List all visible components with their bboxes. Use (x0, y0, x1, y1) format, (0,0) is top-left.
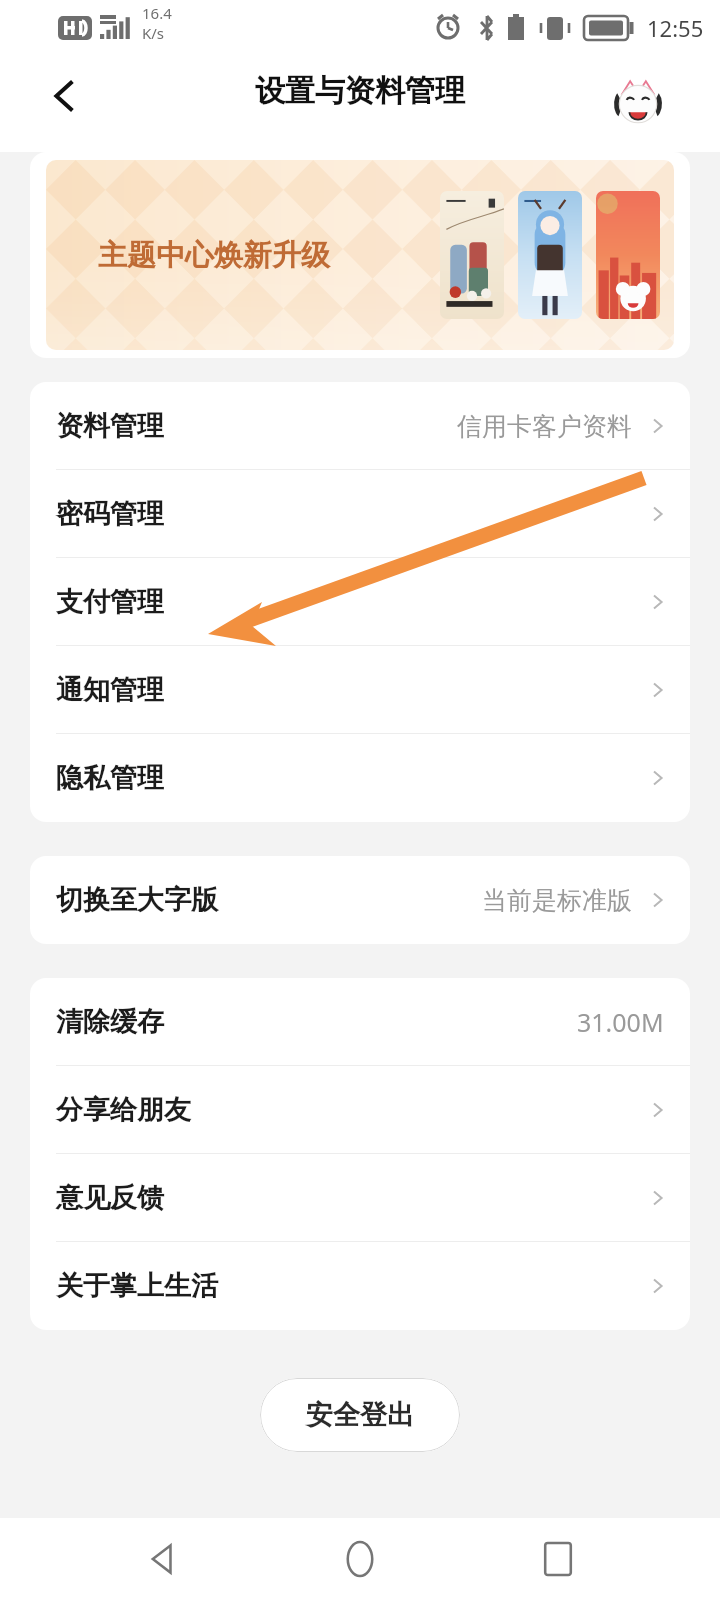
staticText: 支付管理 (56, 585, 164, 619)
staticText: 分享给朋友 (56, 1093, 191, 1127)
staticText: 通知管理 (56, 673, 164, 707)
button[interactable]: 资料管理 (30, 382, 690, 470)
staticText: 切换至大字版 (56, 883, 218, 917)
staticText: 16.4 (142, 3, 172, 23)
staticText: 31.00M (577, 1005, 664, 1039)
staticText: 设置与资料管理 (255, 72, 465, 110)
button[interactable]: 分享给朋友 (30, 1066, 690, 1154)
staticText: K/s (142, 23, 165, 43)
button[interactable]: Back (128, 1524, 198, 1594)
button[interactable]: Recent apps (523, 1524, 593, 1594)
button[interactable]: Theme preview (596, 191, 660, 319)
staticText: 安全登出 (306, 1398, 414, 1432)
staticText: 隐私管理 (56, 761, 164, 795)
staticText: 关于掌上生活 (56, 1269, 218, 1303)
button[interactable]: Theme preview (518, 191, 582, 319)
staticText: 密码管理 (56, 497, 164, 531)
staticText: 意见反馈 (56, 1181, 164, 1215)
button[interactable]: Theme preview (440, 191, 504, 319)
button[interactable]: 关于掌上生活 (30, 1242, 690, 1330)
button[interactable]: 主题中心焕新升级 (30, 152, 690, 358)
button[interactable]: 隐私管理 (30, 734, 690, 822)
button[interactable]: 切换至大字版 (30, 856, 690, 944)
button[interactable]: 密码管理 (30, 470, 690, 558)
staticText: 资料管理 (56, 409, 164, 443)
button[interactable]: 支付管理 (30, 558, 690, 646)
button[interactable]: 清除缓存 (30, 978, 690, 1066)
staticText: 当前是标准版 (482, 885, 632, 916)
staticText: 主题中心焕新升级 (98, 237, 330, 274)
button[interactable]: Home (325, 1524, 395, 1594)
button[interactable]: Back (28, 58, 104, 134)
staticText: 12:55 (647, 13, 704, 43)
button[interactable]: Profile (608, 72, 668, 132)
staticText: 信用卡客户资料 (457, 411, 632, 442)
button[interactable]: 安全登出 (260, 1378, 460, 1452)
button[interactable]: 通知管理 (30, 646, 690, 734)
staticText: 清除缓存 (56, 1005, 164, 1039)
button[interactable]: 意见反馈 (30, 1154, 690, 1242)
